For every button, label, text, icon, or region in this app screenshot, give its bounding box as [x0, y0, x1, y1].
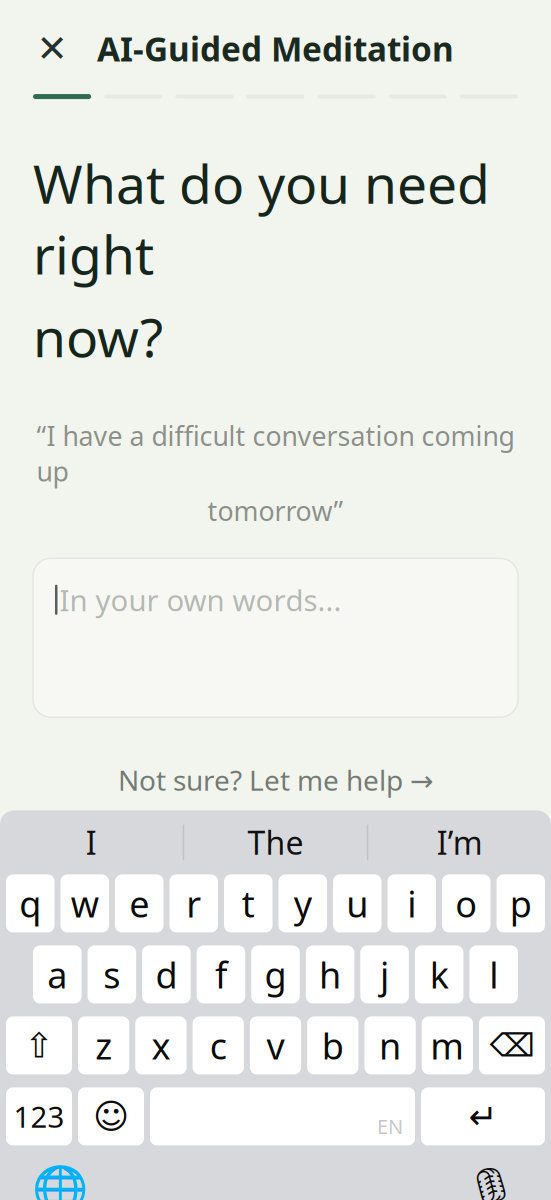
button[interactable]: r	[169, 874, 218, 932]
staticText: g	[264, 950, 286, 998]
button[interactable]: h	[306, 945, 354, 1003]
staticText: What do you need right	[33, 148, 490, 289]
staticText: d	[155, 950, 177, 998]
button[interactable]: t	[224, 874, 272, 932]
staticText: tomorrow”	[207, 493, 343, 528]
staticText: q	[19, 879, 41, 927]
staticText: r	[186, 879, 201, 927]
staticText: u	[346, 879, 368, 927]
button[interactable]: Space	[150, 1087, 415, 1145]
button[interactable]: l	[469, 945, 518, 1003]
button[interactable]: b	[307, 1016, 358, 1074]
button[interactable]: c	[193, 1016, 244, 1074]
button[interactable]: a	[33, 945, 82, 1003]
button[interactable]: Return	[421, 1087, 545, 1145]
staticText: ⌫	[489, 1027, 534, 1064]
button[interactable]: I	[0, 810, 183, 874]
staticText: 123	[13, 1097, 64, 1136]
staticText: e	[129, 879, 149, 927]
staticText: now?	[33, 301, 163, 372]
staticText: I	[86, 821, 97, 864]
staticText: t	[242, 879, 255, 927]
staticText: f	[215, 950, 227, 998]
button[interactable]: j	[360, 945, 409, 1003]
staticText: c	[210, 1021, 227, 1069]
button[interactable]: Close	[25, 22, 79, 76]
button[interactable]: The	[184, 810, 367, 874]
staticText: In your own words...	[59, 580, 341, 619]
staticText: ↵	[468, 1097, 497, 1136]
staticText: y	[294, 879, 312, 927]
button[interactable]: Change keyboard	[32, 1161, 88, 1200]
staticText: z	[95, 1021, 112, 1069]
button[interactable]: u	[333, 874, 381, 932]
staticText: p	[510, 879, 532, 927]
staticText: I’m	[437, 821, 483, 864]
staticText: “I have a difficult conversation coming …	[36, 418, 514, 489]
button[interactable]: Numbers	[6, 1087, 72, 1145]
button[interactable]: Dictation	[463, 1161, 519, 1200]
button[interactable]: I’m	[368, 810, 551, 874]
button[interactable]: f	[197, 945, 245, 1003]
staticText: EN	[377, 1113, 403, 1139]
button[interactable]: n	[364, 1016, 416, 1074]
button[interactable]: y	[278, 874, 327, 932]
button[interactable]: Shift	[6, 1016, 72, 1074]
button[interactable]: Not sure? Let me help →	[100, 749, 451, 810]
staticText: b	[322, 1021, 344, 1069]
staticText: w	[71, 879, 99, 927]
button[interactable]: s	[88, 945, 136, 1003]
staticText: x	[151, 1021, 170, 1069]
staticText: 🌐	[32, 1163, 88, 1200]
staticText: v	[266, 1021, 284, 1069]
staticText: ⇧	[24, 1026, 53, 1065]
staticText: k	[430, 950, 449, 998]
button[interactable]: d	[142, 945, 191, 1003]
staticText: l	[489, 950, 498, 998]
button[interactable]: p	[496, 874, 545, 932]
staticText: a	[47, 950, 67, 998]
button[interactable]: k	[415, 945, 463, 1003]
button[interactable]: z	[78, 1016, 129, 1074]
button[interactable]: i	[387, 874, 436, 932]
button[interactable]: m	[422, 1016, 473, 1074]
staticText: The	[247, 821, 303, 864]
staticText: ☺	[93, 1097, 129, 1136]
staticText: AI-Guided Meditation	[97, 26, 454, 71]
button[interactable]: g	[251, 945, 300, 1003]
staticText: o	[455, 879, 477, 927]
button[interactable]: In your own words...	[33, 558, 518, 717]
staticText: ✕	[36, 27, 67, 70]
button[interactable]: v	[250, 1016, 301, 1074]
button[interactable]: e	[115, 874, 163, 932]
button[interactable]: o	[442, 874, 490, 932]
button[interactable]: Delete	[479, 1016, 545, 1074]
button[interactable]: x	[135, 1016, 187, 1074]
staticText: n	[379, 1021, 401, 1069]
staticText: j	[380, 950, 389, 998]
staticText: s	[103, 950, 120, 998]
button[interactable]: Emoji	[78, 1087, 144, 1145]
button[interactable]: q	[6, 874, 54, 932]
staticText: 🎙	[464, 1165, 518, 1200]
staticText: Not sure? Let me help →	[118, 761, 433, 798]
staticText: i	[407, 879, 416, 927]
button[interactable]: w	[60, 874, 109, 932]
staticText: m	[430, 1021, 464, 1069]
staticText: h	[319, 950, 341, 998]
